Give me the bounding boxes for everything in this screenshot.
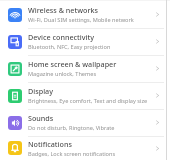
staticText: Sounds xyxy=(28,113,54,123)
staticText: Do not disturb, Ringtone, Vibrate xyxy=(28,124,115,132)
other: Open Home screen & wallpaper xyxy=(150,55,164,82)
button[interactable]: Device connectivity xyxy=(0,28,170,55)
button[interactable]: Notifications xyxy=(0,136,170,160)
button[interactable]: Home screen & wallpaper xyxy=(0,55,170,82)
staticText: Magazine unlock, Themes xyxy=(28,70,97,78)
other: Open Wireless & networks xyxy=(150,1,164,28)
other: Open Notifications xyxy=(150,136,164,160)
staticText: Notifications xyxy=(28,139,72,149)
staticText: Brightness, Eye comfort, Text and displa… xyxy=(28,97,148,105)
other: Open Sounds xyxy=(150,109,164,136)
staticText: Wireless & networks xyxy=(28,5,98,15)
button[interactable]: Wireless & networks xyxy=(0,1,170,28)
staticText: Display xyxy=(28,86,53,96)
staticText: Badges, Lock screen notifications xyxy=(28,150,116,158)
button[interactable]: Sounds xyxy=(0,109,170,136)
staticText: Device connectivity xyxy=(28,32,95,42)
staticText: Wi-Fi, Dual SIM settings, Mobile network xyxy=(28,16,134,24)
staticText: Home screen & wallpaper xyxy=(28,59,117,69)
other: Open Device connectivity xyxy=(150,28,164,55)
other: Open Display xyxy=(150,82,164,109)
button[interactable]: Display xyxy=(0,82,170,109)
staticText: Bluetooth, NFC, Easy projection xyxy=(28,43,111,51)
